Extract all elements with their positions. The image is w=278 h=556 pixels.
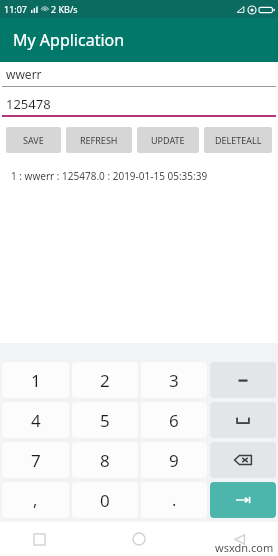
- button[interactable]: 3: [141, 362, 207, 398]
- button[interactable]: 7: [2, 442, 69, 478]
- staticText: wwerr: [6, 66, 42, 82]
- button[interactable]: DELETEALL: [204, 127, 272, 153]
- button[interactable]: 6: [141, 402, 207, 438]
- staticText: 6: [169, 409, 179, 432]
- button[interactable]: Recents: [24, 524, 54, 554]
- button[interactable]: wwerr: [0, 62, 278, 86]
- staticText: 3: [169, 369, 179, 392]
- button[interactable]: 2: [72, 362, 138, 398]
- button[interactable]: Back: [224, 524, 254, 554]
- button[interactable]: .: [141, 482, 207, 518]
- button[interactable]: UPDATE: [137, 127, 199, 153]
- button[interactable]: 0: [72, 482, 138, 518]
- button[interactable]: 5: [72, 402, 138, 438]
- staticText: ,: [33, 489, 38, 511]
- button[interactable]: Space: [210, 402, 276, 438]
- staticText: UPDATE: [151, 134, 185, 146]
- staticText: REFRESH: [80, 134, 118, 146]
- button[interactable]: REFRESH: [66, 127, 132, 153]
- staticText: 7: [31, 449, 41, 472]
- staticText: 1 : wwerr : 125478.0 : 2019-01-15 05:35:…: [11, 169, 208, 183]
- button[interactable]: Backspace: [210, 442, 276, 478]
- button[interactable]: 1: [2, 362, 69, 398]
- button[interactable]: 9: [141, 442, 207, 478]
- staticText: 0: [100, 489, 110, 512]
- staticText: SAVE: [23, 134, 44, 146]
- staticText: 2: [100, 369, 110, 392]
- staticText: 4: [31, 409, 41, 432]
- staticText: .: [172, 489, 177, 511]
- button[interactable]: 4: [2, 402, 69, 438]
- button[interactable]: 125478: [0, 92, 278, 115]
- staticText: 1: [31, 369, 41, 392]
- button[interactable]: Minus: [210, 362, 276, 398]
- button[interactable]: SAVE: [6, 127, 61, 153]
- staticText: 11:07: [4, 3, 28, 15]
- staticText: My Application: [13, 29, 125, 51]
- staticText: 8: [100, 449, 110, 472]
- staticText: DELETEALL: [215, 134, 262, 146]
- staticText: 125478: [6, 95, 51, 113]
- button[interactable]: 8: [72, 442, 138, 478]
- staticText: wsxdn.com: [215, 540, 274, 555]
- button[interactable]: Enter: [210, 482, 276, 518]
- staticText: 5: [100, 409, 110, 432]
- staticText: 9: [169, 449, 179, 472]
- button[interactable]: ,: [2, 482, 69, 518]
- button[interactable]: Home: [124, 524, 154, 554]
- staticText: 2 KB/s: [51, 3, 78, 15]
